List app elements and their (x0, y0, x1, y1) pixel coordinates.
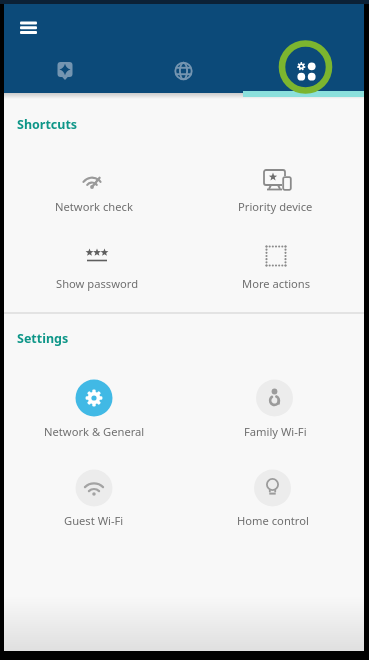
staticText: Guest Wi-Fi (64, 513, 124, 528)
staticText: Network check (55, 199, 133, 214)
staticText: More actions (242, 276, 311, 291)
staticText: Priority device (238, 199, 313, 214)
staticText: Family Wi-Fi (244, 424, 307, 439)
staticText: Network & General (44, 424, 145, 439)
staticText: Settings (17, 330, 69, 347)
staticText: Home control (237, 513, 309, 528)
staticText: Shortcuts (17, 116, 78, 133)
staticText: Show password (56, 276, 139, 291)
